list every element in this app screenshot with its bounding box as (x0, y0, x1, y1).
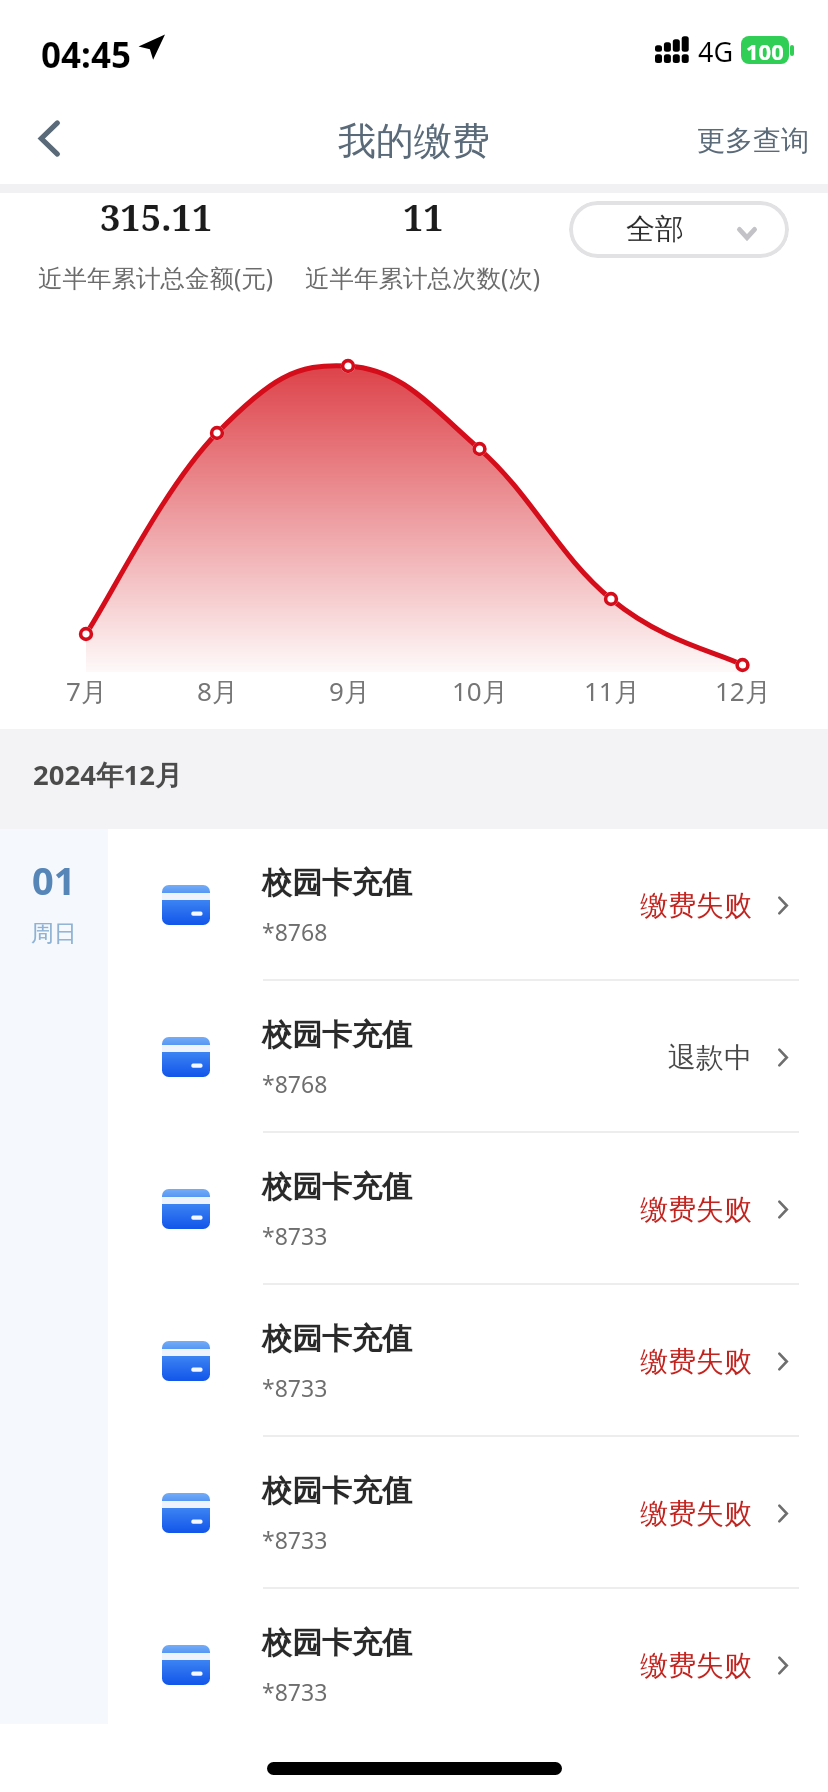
staticText: 校园卡充值 (262, 1624, 412, 1662)
button[interactable]: 校园卡充值 (108, 1285, 828, 1437)
other: Cellular signal (655, 37, 689, 63)
button[interactable]: 校园卡充值 (108, 1589, 828, 1741)
staticText: 12月 (715, 673, 771, 709)
button[interactable]: 更多查询 (675, 103, 828, 178)
staticText: 2024年12月 (33, 756, 183, 794)
staticText: 近半年累计总次数(次) (305, 261, 541, 294)
staticText: 我的缴费 (338, 117, 490, 165)
staticText: 11月 (584, 673, 640, 709)
staticText: 校园卡充值 (262, 864, 412, 902)
staticText: 校园卡充值 (262, 1168, 412, 1206)
staticText: 退款中 (668, 1040, 752, 1075)
staticText: 4G (698, 33, 734, 70)
staticText: 7月 (66, 673, 107, 709)
staticText: *8733 (262, 1220, 328, 1251)
staticText: 8月 (197, 673, 238, 709)
staticText: 缴费失败 (640, 1496, 752, 1531)
staticText: 缴费失败 (640, 1344, 752, 1379)
button[interactable]: 校园卡充值 (108, 1133, 828, 1285)
staticText: 全部 (626, 211, 684, 248)
staticText: 近半年累计总金额(元) (38, 261, 274, 294)
staticText: 100 (746, 36, 784, 64)
staticText: 04:45 (41, 31, 131, 79)
staticText: 315.11 (100, 193, 213, 242)
staticText: 10月 (452, 673, 508, 709)
staticText: *8733 (262, 1524, 328, 1555)
staticText: 校园卡充值 (262, 1016, 412, 1054)
button[interactable]: 校园卡充值 (108, 829, 828, 981)
staticText: *8768 (262, 1068, 328, 1099)
staticText: 缴费失败 (640, 1648, 752, 1683)
staticText: 11 (403, 193, 444, 242)
staticText: 缴费失败 (640, 1192, 752, 1227)
staticText: *8768 (262, 916, 328, 947)
staticText: 周日 (31, 919, 77, 948)
button[interactable]: 全部 (569, 201, 789, 258)
button[interactable]: 校园卡充值 (108, 981, 828, 1133)
staticText: 01 (32, 854, 76, 906)
button[interactable]: 校园卡充值 (108, 1437, 828, 1589)
staticText: 校园卡充值 (262, 1320, 412, 1358)
staticText: 更多查询 (697, 123, 809, 158)
button[interactable]: Back (0, 92, 96, 184)
staticText: *8733 (262, 1676, 328, 1707)
staticText: *8733 (262, 1372, 328, 1403)
other: Location active (138, 33, 165, 60)
staticText: 缴费失败 (640, 888, 752, 923)
staticText: 校园卡充值 (262, 1472, 412, 1510)
staticText: 9月 (329, 673, 370, 709)
